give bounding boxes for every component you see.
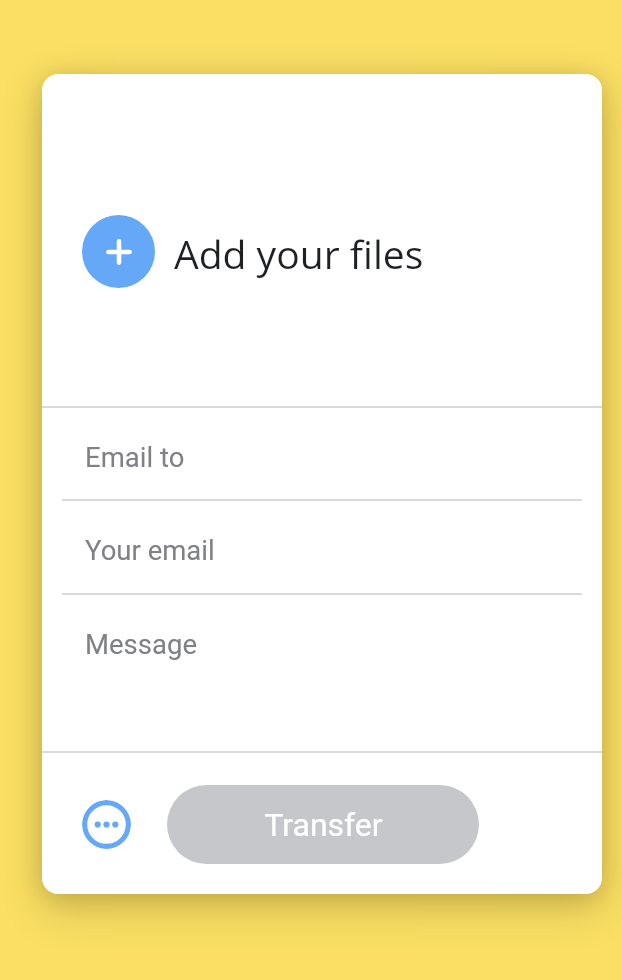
button[interactable]: Email to xyxy=(42,408,602,501)
staticText: Add your files xyxy=(174,227,424,280)
staticText: Message xyxy=(85,628,197,660)
staticText: Your email xyxy=(85,534,215,566)
button[interactable]: Transfer xyxy=(167,785,479,864)
staticText: Transfer xyxy=(264,806,383,844)
button[interactable]: Message xyxy=(42,595,602,751)
button[interactable]: More options xyxy=(82,800,131,849)
button[interactable]: Add your files xyxy=(42,74,602,406)
staticText: Email to xyxy=(85,441,185,473)
button[interactable]: Your email xyxy=(42,501,602,595)
